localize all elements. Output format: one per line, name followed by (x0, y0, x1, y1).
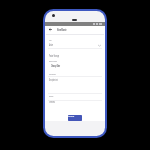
staticText: Description (49, 73, 56, 76)
staticText: Description text (49, 78, 58, 82)
staticText: Review (49, 95, 53, 98)
staticText: Active (49, 43, 53, 47)
staticText: Timeless (49, 100, 55, 104)
staticText: Title (49, 39, 52, 42)
staticText: Release Date (49, 60, 57, 63)
staticText: New Movie (57, 28, 67, 32)
staticText: Poster Storage (49, 54, 59, 58)
button[interactable]: Back (49, 28, 52, 31)
staticText: ADD MOVIE (68, 115, 74, 118)
button[interactable]: ADD MOVIE (68, 115, 82, 121)
staticText: Choosy Date (51, 64, 60, 68)
